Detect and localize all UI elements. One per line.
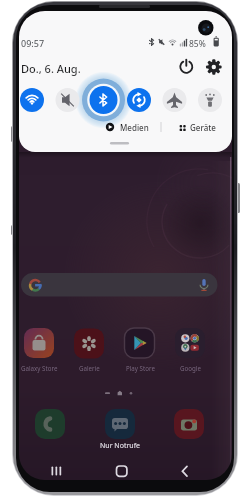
button[interactable]: [171, 461, 201, 480]
staticText: Play Store: [126, 364, 155, 372]
button[interactable]: [105, 409, 135, 439]
button[interactable]: [21, 273, 217, 296]
button[interactable]: [127, 88, 151, 112]
button[interactable]: [104, 118, 154, 136]
button[interactable]: [163, 88, 187, 112]
staticText: 09:57: [21, 37, 45, 49]
button[interactable]: [20, 88, 44, 112]
staticText: Do., 6. Aug.: [21, 61, 81, 76]
button[interactable]: [90, 86, 118, 114]
button[interactable]: [174, 409, 204, 439]
button[interactable]: [171, 118, 219, 136]
button[interactable]: [177, 57, 196, 76]
staticText: Medien: [120, 122, 149, 133]
staticText: 85%: [189, 38, 206, 50]
button[interactable]: [24, 328, 54, 358]
button[interactable]: [35, 409, 65, 439]
button[interactable]: [107, 461, 137, 480]
staticText: Google: [180, 364, 201, 372]
staticText: Galerie: [79, 364, 100, 372]
button[interactable]: [125, 328, 155, 358]
button[interactable]: [74, 328, 104, 358]
button[interactable]: [198, 88, 222, 112]
staticText: Nur Notrufe: [100, 441, 141, 451]
staticText: Geräte: [190, 122, 216, 133]
button[interactable]: [56, 88, 80, 112]
button[interactable]: [175, 328, 205, 358]
button[interactable]: [204, 57, 223, 76]
button[interactable]: [41, 461, 71, 480]
staticText: Galaxy Store: [21, 364, 58, 372]
